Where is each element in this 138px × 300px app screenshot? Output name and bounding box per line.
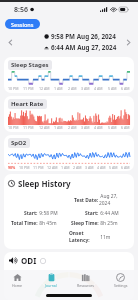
button[interactable]: Sleep History	[4, 174, 134, 249]
staticText: Sleep Stages	[11, 61, 49, 69]
staticText: 11m	[99, 234, 111, 241]
staticText: 12 AM	[47, 165, 58, 170]
staticText: 12 AM	[39, 125, 50, 130]
button[interactable]: Sleep Stages	[4, 57, 134, 93]
staticText: Aug 27, 2024	[99, 193, 130, 207]
staticText: 6:44 AM	[99, 210, 119, 217]
staticText: 3 AM	[85, 165, 94, 170]
button[interactable]: ODI	[4, 252, 134, 300]
staticText: 6 AM	[121, 165, 130, 170]
staticText: 90%	[8, 165, 16, 170]
staticText: 6 AM	[121, 125, 130, 130]
staticText: 3 AM	[81, 125, 90, 130]
staticText: Resources	[77, 283, 94, 288]
staticText: 11 PM	[33, 165, 44, 170]
staticText: Sleep History	[18, 178, 71, 189]
button[interactable]: Settings	[103, 270, 138, 291]
staticText: 11 PM	[23, 125, 34, 130]
staticText: Sleep Time:	[71, 220, 99, 227]
staticText: 4 AM	[94, 125, 103, 130]
staticText: Settings	[114, 283, 128, 288]
staticText: 6:44 AM Aug 27, 2024	[51, 43, 117, 52]
staticText: 3 AM	[81, 86, 90, 91]
staticText: 1 AM	[61, 165, 70, 170]
staticText: 2 AM	[68, 125, 77, 130]
staticText: 1 AM	[54, 86, 63, 91]
button[interactable]: Home	[0, 270, 34, 291]
staticText: 11 PM	[23, 86, 34, 91]
staticText: 4 AM	[97, 165, 106, 170]
staticText: SpO2	[11, 139, 27, 147]
staticText: 12 AM	[39, 86, 50, 91]
staticText: 8h 45m	[38, 220, 57, 227]
button[interactable]: Heart Rate	[4, 96, 134, 132]
staticText: 10 PM	[19, 165, 30, 170]
staticText: Start:	[85, 210, 99, 217]
button[interactable]: Journal	[34, 270, 68, 291]
staticText: Journal	[45, 283, 57, 288]
button[interactable]: Sessions	[5, 19, 40, 29]
staticText: Test Date:	[74, 197, 99, 204]
other: Info	[40, 258, 46, 264]
staticText: Sessions	[11, 21, 34, 28]
staticText: Start:	[24, 210, 38, 217]
staticText: ODI	[21, 255, 37, 266]
staticText: Onset Latency:	[69, 230, 99, 244]
staticText: 10 PM	[8, 86, 19, 91]
staticText: 6 AM	[121, 86, 130, 91]
staticText: 5 AM	[108, 125, 117, 130]
staticText: 8h 25m	[99, 220, 118, 227]
staticText: 8:56	[14, 5, 28, 15]
staticText: 9:58 PM Aug 26, 2024	[51, 32, 116, 41]
staticText: 9:58 PM	[38, 210, 58, 217]
staticText: 2 AM	[73, 165, 82, 170]
staticText: 2 AM	[68, 86, 77, 91]
staticText: Heart Rate	[11, 100, 44, 108]
staticText: Total Time:	[11, 220, 38, 227]
staticText: 4 AM	[94, 86, 103, 91]
button[interactable]: Resources	[68, 270, 103, 291]
button[interactable]: Next night	[121, 35, 135, 49]
staticText: 10 PM	[8, 125, 19, 130]
staticText: 5 AM	[108, 86, 117, 91]
button[interactable]: Previous night	[3, 35, 17, 49]
button[interactable]: SpO2	[4, 135, 134, 171]
staticText: 5 AM	[109, 165, 118, 170]
staticText: Home	[12, 283, 22, 288]
staticText: 1 AM	[54, 125, 63, 130]
